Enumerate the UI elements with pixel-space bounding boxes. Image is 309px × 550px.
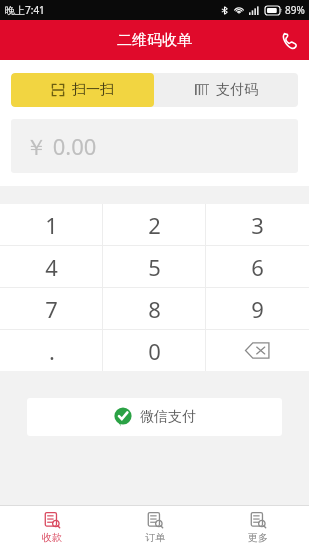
staticText: 89% (285, 3, 305, 17)
button[interactable]: 微信支付 (27, 398, 282, 436)
staticText: 扫一扫 (72, 81, 114, 99)
button[interactable]: 更多 (206, 506, 309, 550)
staticText: 3 (251, 210, 264, 240)
staticText: ￥ 0.00 (25, 131, 97, 161)
button[interactable]: 1 (0, 204, 103, 245)
staticText: 晚上7:41 (5, 3, 45, 17)
staticText: 8 (148, 294, 161, 324)
button[interactable]: 收款 (0, 506, 103, 550)
staticText: 收款 (42, 531, 62, 544)
button[interactable]: 7 (0, 288, 103, 329)
button[interactable]: 2 (103, 204, 206, 245)
button[interactable]: ￥ 0.00 (11, 119, 298, 173)
button[interactable]: Call (269, 20, 309, 60)
staticText: 更多 (248, 531, 268, 544)
staticText: 4 (45, 252, 58, 282)
staticText: 2 (148, 210, 161, 240)
button[interactable]: 扫一扫 (11, 73, 154, 107)
button[interactable]: 3 (206, 204, 309, 245)
staticText: 6 (251, 252, 264, 282)
staticText: 0 (148, 336, 161, 366)
button[interactable]: . (0, 330, 103, 371)
staticText: 微信支付 (140, 408, 196, 426)
button[interactable]: 9 (206, 288, 309, 329)
button[interactable]: 6 (206, 246, 309, 287)
staticText: 订单 (145, 531, 165, 544)
button[interactable]: Backspace (206, 330, 309, 371)
staticText: 二维码收单 (117, 31, 192, 50)
button[interactable]: 8 (103, 288, 206, 329)
button[interactable]: 订单 (103, 506, 206, 550)
staticText: 1 (45, 210, 58, 240)
staticText: 5 (148, 252, 161, 282)
staticText: 9 (251, 294, 264, 324)
button[interactable]: 支付码 (154, 73, 298, 107)
staticText: 7 (45, 294, 58, 324)
button[interactable]: 4 (0, 246, 103, 287)
button[interactable]: 0 (103, 330, 206, 371)
staticText: 支付码 (216, 81, 258, 99)
button[interactable]: 5 (103, 246, 206, 287)
staticText: . (49, 336, 55, 366)
